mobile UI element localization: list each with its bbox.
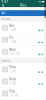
- staticText: 500 KB: [9, 52, 20, 56]
- staticText: 24 MB: [9, 94, 18, 97]
- staticText: SHARED: [1, 59, 11, 62]
- button[interactable]: Pic: [0, 34, 46, 46]
- staticText: Files: [20, 4, 26, 7]
- button[interactable]: Note: [0, 46, 46, 58]
- staticText: 1 MB: [9, 40, 16, 44]
- button[interactable]: Plan: [0, 64, 46, 76]
- button[interactable]: Deck: [0, 76, 46, 88]
- staticText: Doc: [9, 24, 14, 27]
- button[interactable]: All: [1, 10, 6, 16]
- staticText: 9:41: [1, 0, 8, 3]
- staticText: 3 MB: [9, 70, 16, 73]
- staticText: Clip: [9, 90, 15, 93]
- staticText: Plan: [9, 66, 16, 69]
- staticText: 8 MB: [9, 82, 16, 85]
- staticText: Deck: [9, 78, 15, 81]
- staticText: RECENT: [1, 17, 10, 21]
- staticText: All: [2, 11, 6, 15]
- button[interactable]: More options: [40, 3, 45, 7]
- button[interactable]: Doc: [0, 22, 46, 34]
- staticText: Pic: [9, 36, 13, 39]
- button[interactable]: Clip: [0, 88, 46, 100]
- staticText: Note: [9, 48, 16, 51]
- staticText: 2 MB: [9, 28, 16, 32]
- button[interactable]: Back: [1, 3, 6, 7]
